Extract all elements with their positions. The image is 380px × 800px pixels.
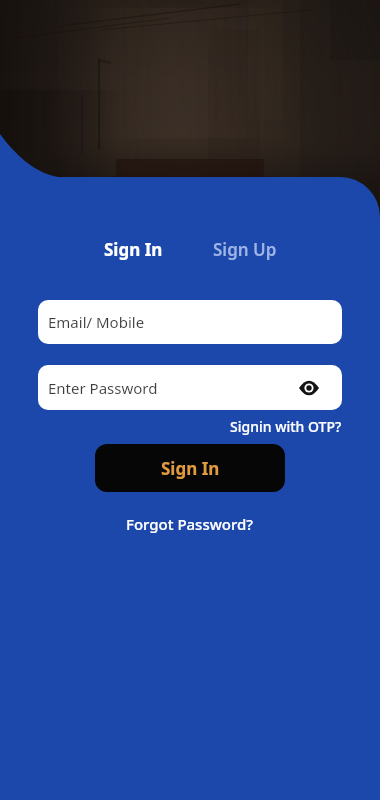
staticText: Sign In — [161, 457, 220, 480]
button[interactable]: Signin with OTP? — [230, 417, 342, 436]
button[interactable]: Enter Password — [38, 365, 342, 410]
staticText: Sign In — [104, 238, 163, 261]
button[interactable]: Forgot Password? — [126, 514, 254, 534]
button[interactable]: Email/ Mobile — [38, 300, 342, 344]
button[interactable]: Sign In — [95, 444, 285, 492]
staticText: Email/ Mobile — [48, 312, 145, 332]
staticText: Sign Up — [213, 238, 277, 261]
staticText: Forgot Password? — [126, 514, 254, 534]
staticText: Enter Password — [48, 378, 158, 398]
staticText: Signin with OTP? — [230, 417, 342, 436]
button[interactable]: Sign Up — [213, 238, 277, 261]
button[interactable]: Sign In — [104, 238, 163, 261]
